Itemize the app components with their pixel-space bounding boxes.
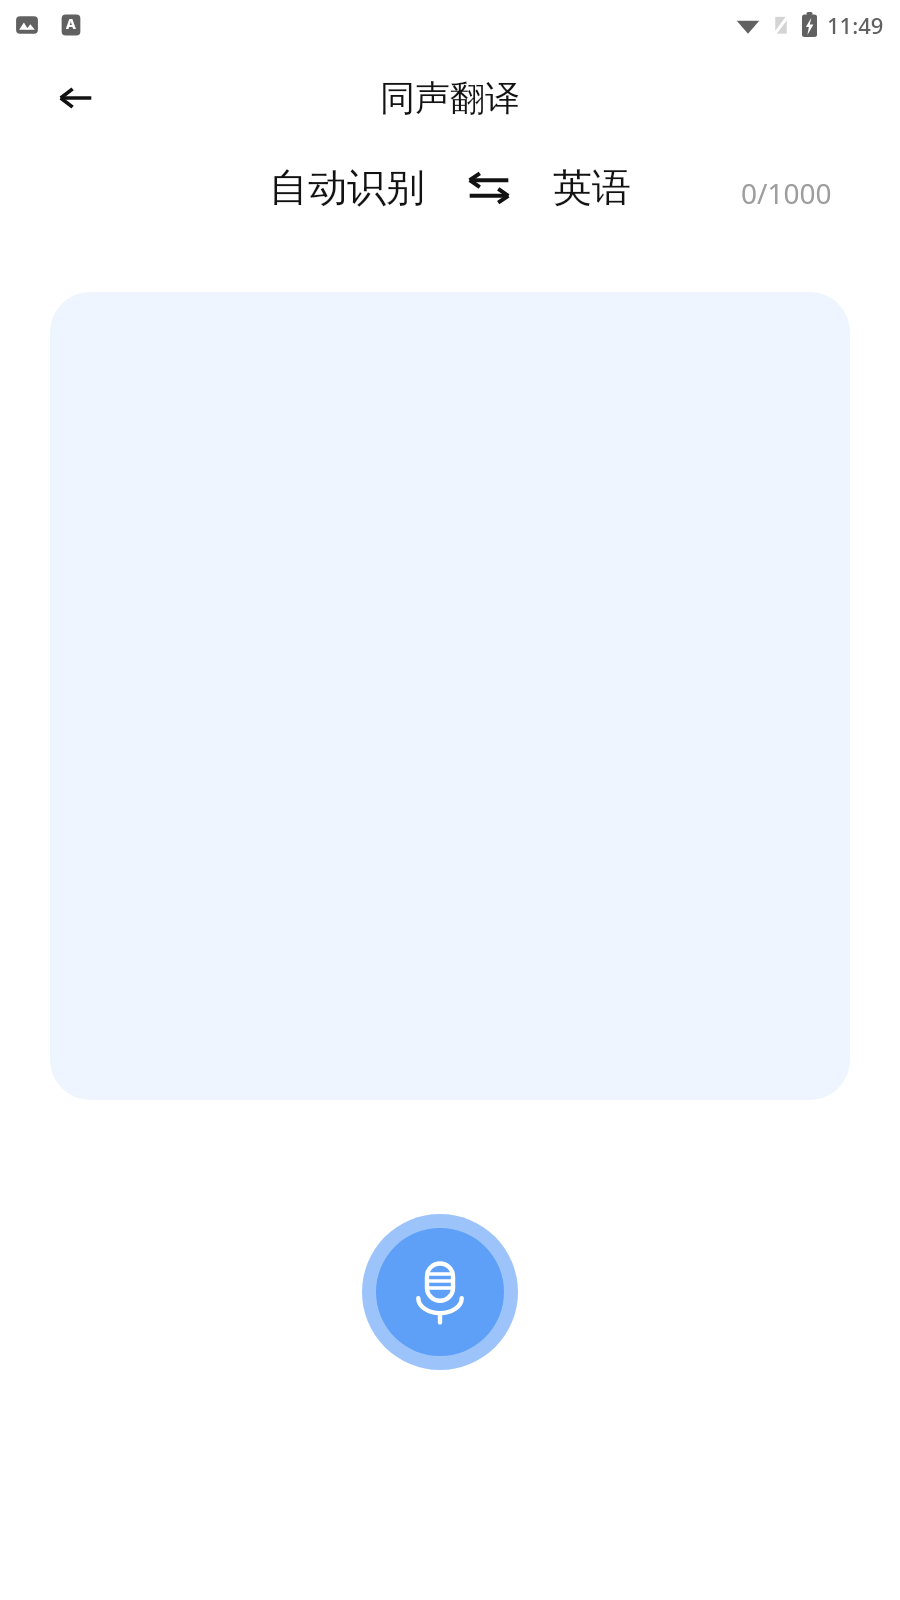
button[interactable]: Back [46,68,106,128]
button[interactable]: 英语 [547,157,637,218]
staticText: 自动识别 [269,163,425,212]
button[interactable]: 自动识别 [263,157,431,218]
staticText: 英语 [553,163,631,212]
staticText: 0/1000 [741,174,832,212]
button[interactable]: Swap languages [461,160,517,216]
button[interactable]: Start voice recording [362,1214,518,1370]
staticText: A [66,14,76,33]
staticText: 11:49 [827,10,884,40]
staticText: 同声翻译 [380,76,520,120]
